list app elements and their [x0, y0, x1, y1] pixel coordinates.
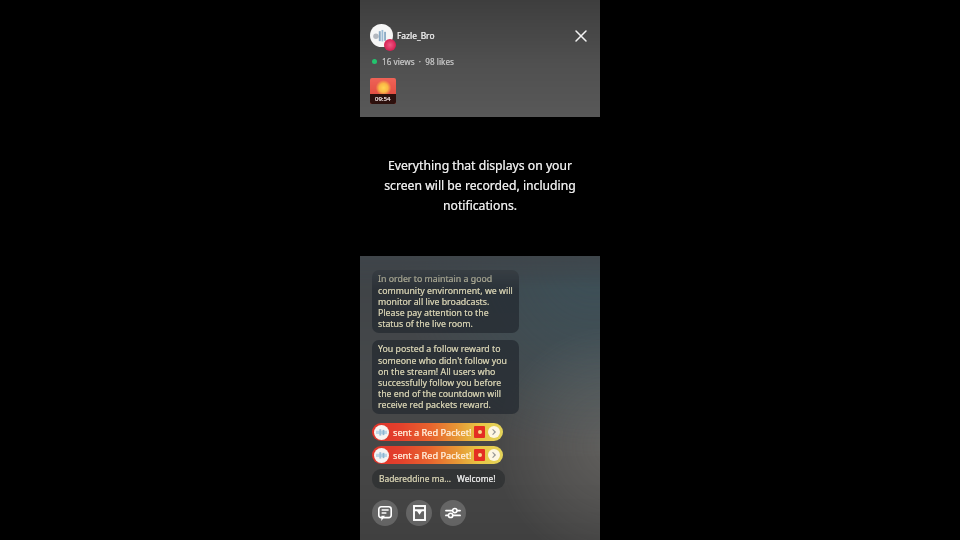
button[interactable]: sent a Red Packet!: [372, 423, 503, 441]
button[interactable]: You posted a follow reward to someone wh…: [372, 340, 519, 414]
button[interactable]: Fazle_Bro: [370, 20, 441, 55]
button[interactable]: Close: [573, 28, 589, 44]
button[interactable]: Settings: [440, 500, 466, 526]
staticText: Welcome!: [457, 473, 496, 484]
button[interactable]: In order to maintain a good community en…: [372, 270, 519, 333]
staticText: Everything that displays on your screen …: [374, 157, 586, 214]
staticText: 09:54: [375, 95, 391, 103]
staticText: 16 views · 98 likes: [382, 56, 454, 67]
button[interactable]: Badereddine ma...: [372, 469, 505, 489]
button[interactable]: sent a Red Packet!: [372, 446, 503, 464]
staticText: sent a Red Packet!: [393, 426, 472, 439]
staticText: Badereddine ma...: [379, 473, 451, 484]
button[interactable]: Recording thumbnail: [370, 78, 396, 104]
staticText: In order to maintain a good community en…: [378, 273, 513, 330]
staticText: You posted a follow reward to someone wh…: [378, 343, 513, 411]
button[interactable]: 16 views · 98 likes: [372, 53, 454, 70]
button[interactable]: Gifts: [406, 500, 432, 526]
button[interactable]: Comments: [372, 500, 398, 526]
staticText: sent a Red Packet!: [393, 449, 472, 462]
staticText: Fazle_Bro: [397, 30, 435, 41]
